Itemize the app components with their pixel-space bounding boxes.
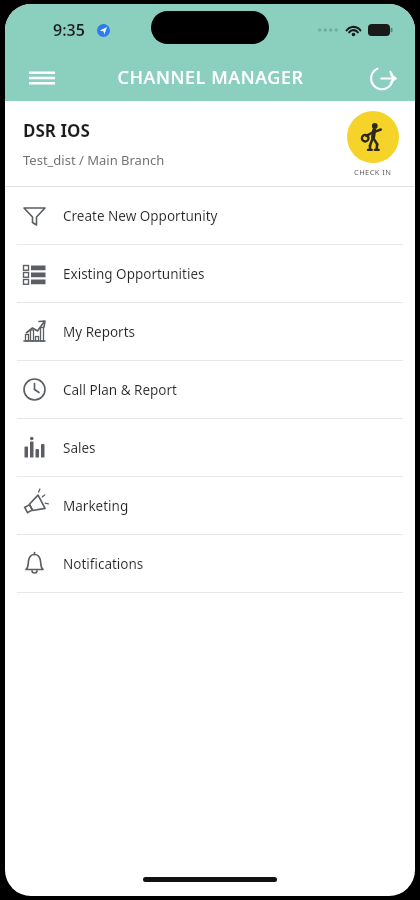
button[interactable]: Call Plan & Report [5, 361, 415, 418]
staticText: Create New Opportunity [63, 207, 218, 225]
button[interactable]: Menu [23, 59, 61, 97]
button[interactable]: Notifications [5, 535, 415, 592]
button[interactable]: Create New Opportunity [5, 187, 415, 244]
button[interactable]: CHECK IN [347, 111, 399, 177]
staticText: 9:35 [53, 19, 85, 41]
staticText: CHECK IN [354, 167, 392, 177]
staticText: Marketing [63, 497, 129, 515]
staticText: Test_dist / Main Branch [23, 151, 165, 169]
staticText: My Reports [63, 323, 136, 341]
staticText: DSR IOS [23, 119, 90, 142]
staticText: Call Plan & Report [63, 381, 177, 399]
staticText: Sales [63, 439, 96, 457]
staticText: Existing Opportunities [63, 265, 205, 283]
button[interactable]: Existing Opportunities [5, 245, 415, 302]
button[interactable]: Logout [363, 58, 403, 98]
button[interactable]: My Reports [5, 303, 415, 360]
staticText: CHANNEL MANAGER [117, 65, 304, 90]
button[interactable]: Sales [5, 419, 415, 476]
button[interactable]: Marketing [5, 477, 415, 534]
staticText: Notifications [63, 555, 144, 573]
